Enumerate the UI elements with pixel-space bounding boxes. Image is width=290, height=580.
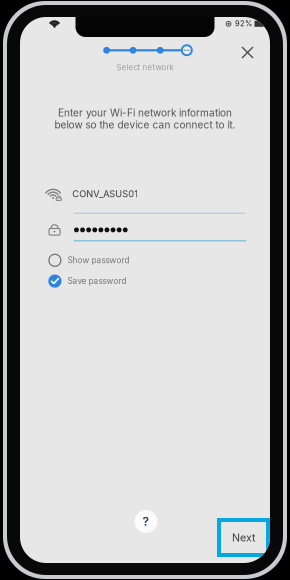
staticText: Select network: [116, 63, 173, 72]
staticText: ?: [142, 514, 149, 529]
staticText: Enter your Wi-Fi network information: [58, 107, 232, 119]
button[interactable]: Help: [134, 510, 157, 533]
button[interactable]: Next: [217, 518, 270, 557]
button[interactable]: Save password: [48, 272, 156, 291]
staticText: Show password: [67, 255, 129, 265]
button[interactable]: Show password: [48, 251, 156, 270]
staticText: 92%: [235, 19, 252, 28]
button[interactable]: Close: [234, 39, 261, 66]
staticText: CONV_ASUS01: [72, 188, 138, 199]
staticText: Next: [232, 531, 255, 544]
staticText: Save password: [67, 276, 126, 286]
staticText: below so the device can connect to it.: [54, 119, 235, 131]
